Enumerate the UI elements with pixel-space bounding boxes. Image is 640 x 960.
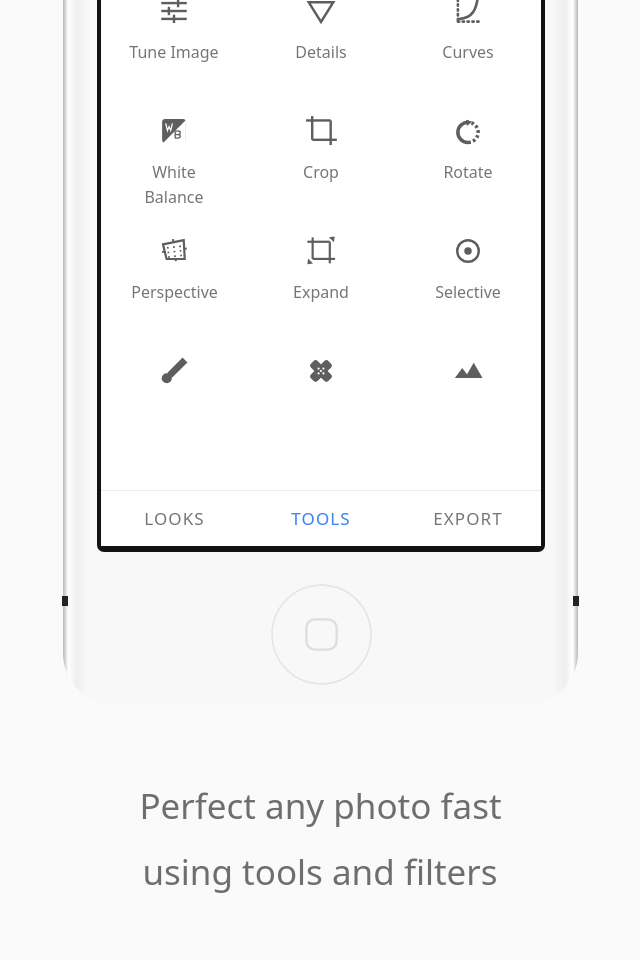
button[interactable]: Details (247, 0, 394, 101)
button[interactable]: TOOLS (247, 491, 394, 546)
staticText: Rotate (443, 161, 493, 183)
button[interactable]: Tool (247, 341, 394, 461)
staticText: Tune Image (129, 41, 219, 63)
button[interactable]: Home (271, 584, 372, 685)
staticText: Details (295, 41, 347, 63)
button[interactable]: EXPORT (394, 491, 541, 546)
staticText: Crop (303, 161, 339, 183)
button[interactable]: LOOKS (101, 491, 247, 546)
staticText: Selective (435, 281, 501, 303)
button[interactable]: Selective (394, 221, 541, 341)
button[interactable]: Crop (247, 101, 394, 221)
button[interactable]: White (101, 101, 247, 221)
button[interactable]: Perspective (101, 221, 247, 341)
staticText: EXPORT (433, 507, 503, 530)
staticText: Balance (144, 186, 204, 208)
staticText: Perfect any photo fast (139, 782, 502, 830)
button[interactable]: Tune Image (101, 0, 247, 101)
button[interactable]: Curves (394, 0, 541, 101)
staticText: Expand (293, 281, 349, 303)
staticText: TOOLS (291, 507, 351, 530)
button[interactable]: Rotate (394, 101, 541, 221)
button[interactable]: Expand (247, 221, 394, 341)
staticText: White (152, 161, 196, 183)
button[interactable]: Tool (101, 341, 247, 461)
staticText: Perspective (131, 281, 218, 303)
staticText: Curves (442, 41, 494, 63)
staticText: LOOKS (144, 507, 205, 530)
button[interactable]: Tool (394, 341, 541, 461)
staticText: using tools and filters (142, 848, 498, 896)
